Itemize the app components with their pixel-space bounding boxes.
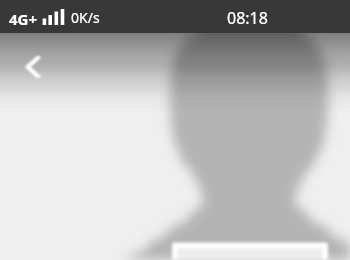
staticText: 0K/s [71,8,100,27]
staticText: 4G+ [9,9,38,29]
button[interactable]: Back [13,47,53,87]
staticText: 08:18 [227,7,268,29]
